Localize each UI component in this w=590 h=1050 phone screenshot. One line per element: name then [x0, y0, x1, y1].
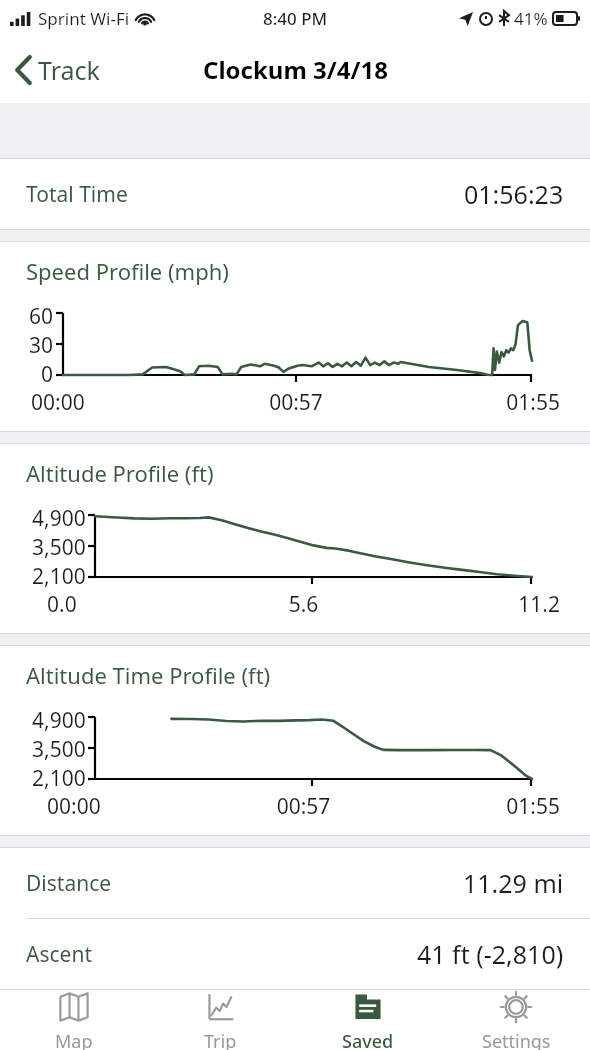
- staticText: 30: [29, 331, 54, 360]
- staticText: Clockum 3/4/18: [203, 53, 388, 86]
- staticText: Speed Profile (mph): [26, 256, 229, 286]
- staticText: 00:57: [208, 388, 384, 417]
- staticText: 2,100: [32, 562, 86, 588]
- staticText: Altitude Time Profile (ft): [26, 660, 271, 690]
- button[interactable]: Saved: [294, 990, 442, 1050]
- staticText: Map: [55, 1029, 93, 1050]
- staticText: 01:55: [384, 388, 560, 417]
- staticText: 00:00: [31, 388, 208, 417]
- staticText: Saved: [342, 1029, 394, 1050]
- staticText: 11.29 mi: [463, 866, 564, 900]
- button[interactable]: Total Time: [0, 159, 590, 229]
- staticText: 41%: [514, 7, 548, 30]
- staticText: Total Time: [26, 180, 128, 209]
- button[interactable]: Track: [12, 47, 104, 93]
- staticText: 5.6: [218, 590, 389, 619]
- staticText: 60: [29, 302, 54, 331]
- staticText: 01:55: [389, 792, 560, 821]
- button[interactable]: Ascent: [0, 919, 590, 989]
- staticText: 2,100: [32, 764, 86, 790]
- staticText: 4,900: [32, 504, 86, 533]
- staticText: 0.0: [47, 590, 218, 619]
- staticText: 0: [41, 360, 54, 386]
- staticText: 00:57: [218, 792, 389, 821]
- staticText: 11.2: [389, 590, 560, 619]
- button[interactable]: Map: [0, 990, 147, 1050]
- staticText: 01:56:23: [464, 177, 564, 211]
- staticText: 4,900: [32, 706, 86, 735]
- button[interactable]: Settings: [442, 990, 590, 1050]
- staticText: Track: [38, 53, 100, 87]
- staticText: Settings: [482, 1029, 551, 1050]
- staticText: 8:40 PM: [263, 7, 328, 30]
- staticText: 3,500: [32, 533, 86, 562]
- staticText: Sprint Wi-Fi: [38, 7, 130, 30]
- staticText: 41 ft (-2,810): [417, 937, 564, 971]
- button[interactable]: Distance: [0, 848, 590, 918]
- staticText: Ascent: [26, 940, 92, 969]
- staticText: Distance: [26, 869, 112, 898]
- staticText: Altitude Profile (ft): [26, 458, 214, 488]
- button[interactable]: Trip: [147, 990, 294, 1050]
- staticText: 3,500: [32, 735, 86, 764]
- staticText: Trip: [204, 1029, 237, 1050]
- staticText: 00:00: [47, 792, 218, 821]
